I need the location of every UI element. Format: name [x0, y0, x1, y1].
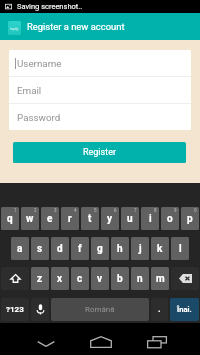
staticText: 5 [94, 208, 97, 213]
staticText: Register a new account [27, 21, 125, 32]
staticText: e [47, 213, 53, 225]
button[interactable]: Password [9, 104, 191, 130]
staticText: 7 [134, 208, 137, 213]
button[interactable]: p [181, 207, 199, 230]
staticText: h [117, 243, 123, 255]
staticText: 0 [194, 208, 197, 213]
staticText: s [37, 243, 43, 255]
button[interactable]: i [141, 207, 159, 230]
staticText: f [78, 243, 82, 255]
staticText: q [7, 213, 13, 225]
staticText: . [158, 304, 161, 315]
button[interactable]: Home [84, 323, 117, 355]
button[interactable]: App icon [8, 21, 21, 35]
staticText: d [57, 243, 63, 255]
staticText: Saving screenshot.. [17, 2, 83, 11]
button[interactable]: Shift [1, 267, 29, 290]
staticText: ?123 [6, 305, 24, 314]
staticText: l [179, 243, 182, 255]
button[interactable]: g [91, 237, 109, 260]
staticText: Register [83, 147, 116, 158]
button[interactable]: . [151, 298, 168, 321]
button[interactable]: y [101, 207, 119, 230]
button[interactable]: u [121, 207, 139, 230]
button[interactable]: t [81, 207, 99, 230]
staticText: Password [17, 112, 61, 123]
staticText: t [88, 213, 92, 225]
staticText: 2 [34, 208, 37, 213]
staticText: w [26, 213, 34, 225]
staticText: z [37, 273, 43, 285]
button[interactable]: z [31, 267, 49, 290]
button[interactable]: s [31, 237, 49, 260]
button[interactable]: Hide keyboard [29, 323, 62, 355]
button[interactable]: ?123 [1, 298, 29, 321]
button[interactable]: d [51, 237, 69, 260]
staticText: o [167, 213, 173, 225]
staticText: r [68, 213, 72, 225]
staticText: Română [85, 305, 115, 314]
staticText: y [107, 213, 113, 225]
staticText: k [157, 243, 163, 255]
button[interactable]: k [151, 237, 169, 260]
staticText: m [156, 273, 165, 285]
staticText: 1 [14, 208, 17, 213]
button[interactable]: m [151, 267, 169, 290]
staticText: x [57, 273, 63, 285]
button[interactable]: v [91, 267, 109, 290]
staticText: Username [17, 58, 62, 69]
staticText: Email [17, 85, 42, 96]
button[interactable]: j [131, 237, 149, 260]
button[interactable]: e [41, 207, 59, 230]
staticText: g [97, 243, 103, 255]
staticText: v [97, 273, 103, 285]
button[interactable]: Română [51, 298, 149, 321]
staticText: c [77, 273, 83, 285]
staticText: 3 [54, 208, 57, 213]
button[interactable]: w [21, 207, 39, 230]
button[interactable]: q [1, 207, 19, 230]
button[interactable]: r [61, 207, 79, 230]
button[interactable]: c [71, 267, 89, 290]
button[interactable]: Voice input [31, 298, 49, 321]
button[interactable]: o [161, 207, 179, 230]
staticText: u [127, 213, 133, 225]
staticText: n [137, 273, 143, 285]
button[interactable]: Register [13, 142, 186, 163]
staticText: 4 [74, 208, 77, 213]
staticText: 8 [154, 208, 157, 213]
staticText: i [149, 213, 152, 225]
button[interactable]: Înai. [170, 298, 199, 321]
staticText: a [17, 243, 23, 255]
staticText: j [139, 243, 142, 255]
button[interactable]: h [111, 237, 129, 260]
staticText: p [187, 213, 193, 225]
button[interactable]: f [71, 237, 89, 260]
button[interactable]: x [51, 267, 69, 290]
staticText: 6 [114, 208, 117, 213]
staticText: Înai. [177, 305, 192, 314]
button[interactable]: Email [9, 77, 191, 103]
staticText: inply [10, 26, 19, 31]
button[interactable]: Username [9, 50, 191, 76]
button[interactable]: a [11, 237, 29, 260]
button[interactable]: Recents [140, 323, 173, 355]
button[interactable]: l [171, 237, 189, 260]
button[interactable]: Backspace [171, 267, 199, 290]
button[interactable]: n [131, 267, 149, 290]
button[interactable]: b [111, 267, 129, 290]
staticText: b [117, 273, 123, 285]
staticText: 9 [174, 208, 177, 213]
